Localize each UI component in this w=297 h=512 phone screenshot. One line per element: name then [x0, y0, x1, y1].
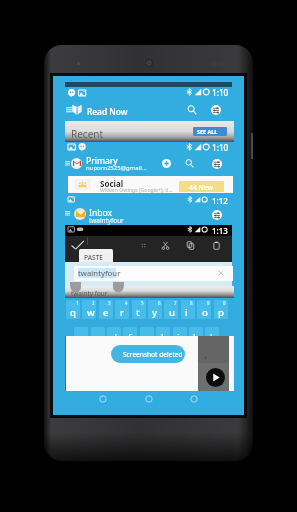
staticText: 7: [174, 300, 177, 306]
staticText: a: [79, 331, 85, 344]
button[interactable]: [123, 327, 137, 346]
staticText: 6: [158, 300, 161, 306]
staticText: f: [128, 331, 132, 344]
staticText: 4: [125, 300, 128, 306]
staticText: i: [185, 306, 188, 319]
staticText: PASTE: [84, 253, 104, 262]
button[interactable]: Copy: [186, 241, 195, 250]
button[interactable]: [164, 300, 178, 319]
button[interactable]: [115, 300, 129, 319]
button[interactable]: [68, 176, 233, 193]
staticText: j: [177, 331, 180, 344]
button[interactable]: [86, 155, 122, 166]
button[interactable]: [156, 327, 170, 346]
button[interactable]: Tune: [211, 105, 221, 115]
button[interactable]: [91, 327, 105, 346]
button[interactable]: [87, 105, 131, 117]
button[interactable]: [99, 300, 113, 319]
staticText: 1:10: [212, 87, 229, 98]
staticText: twainty four: [71, 289, 108, 298]
staticText: y: [152, 306, 158, 319]
staticText: q: [70, 306, 76, 319]
staticText: William Owings (Google+), d...: [100, 186, 173, 193]
staticText: 1:12: [212, 195, 228, 206]
staticText: w: [87, 306, 95, 319]
staticText: d: [111, 331, 117, 344]
staticText: 1: [76, 300, 79, 306]
button[interactable]: [181, 300, 195, 319]
button[interactable]: [197, 300, 211, 319]
button[interactable]: [111, 345, 185, 363]
staticText: twaintyfour: [89, 216, 124, 225]
staticText: g: [144, 331, 150, 344]
button[interactable]: Play: [206, 368, 225, 387]
button[interactable]: Home: [141, 391, 157, 407]
button[interactable]: [89, 207, 115, 218]
staticText: h: [161, 331, 168, 344]
staticText: Read Now: [87, 106, 128, 117]
button[interactable]: Clear: [216, 268, 226, 278]
staticText: k: [193, 331, 199, 344]
button[interactable]: [214, 300, 228, 319]
button[interactable]: Cut: [161, 241, 170, 250]
staticText: u: [169, 306, 176, 319]
button[interactable]: Recents: [186, 391, 202, 407]
button[interactable]: [148, 300, 162, 319]
button[interactable]: [74, 327, 88, 346]
staticText: t: [136, 306, 140, 319]
staticText: l: [210, 331, 213, 344]
staticText: SEE ALL: [197, 128, 218, 135]
staticText: 0: [223, 300, 226, 306]
staticText: Inbox: [89, 207, 113, 219]
button[interactable]: Options: [212, 159, 222, 169]
staticText: e: [103, 306, 109, 319]
button[interactable]: Paste: [212, 241, 221, 250]
staticText: twaintyfour: [78, 268, 121, 279]
button[interactable]: [107, 327, 121, 346]
staticText: Screenshot deleted: [123, 350, 183, 359]
button[interactable]: [189, 327, 203, 346]
staticText: Primary: [86, 155, 118, 167]
staticText: 9: [207, 300, 210, 306]
staticText: Social: [100, 178, 124, 189]
button[interactable]: Options: [212, 210, 222, 220]
staticText: nuporn2525@gmail...: [86, 164, 147, 172]
button[interactable]: Back: [95, 391, 111, 407]
staticText: s: [95, 331, 100, 344]
staticText: Recent: [71, 127, 104, 141]
button[interactable]: [82, 300, 96, 319]
button[interactable]: [205, 327, 219, 346]
button[interactable]: Done: [69, 239, 85, 252]
button[interactable]: [132, 300, 146, 319]
staticText: 3: [108, 300, 111, 306]
button[interactable]: [173, 327, 187, 346]
staticText: 1:13: [212, 225, 228, 236]
staticText: 44 New: [189, 183, 214, 192]
staticText: r: [120, 306, 125, 319]
button[interactable]: Search: [184, 158, 195, 169]
button[interactable]: Search: [186, 104, 198, 116]
staticText: o: [202, 306, 208, 319]
staticText: 1:10: [212, 142, 229, 153]
staticText: 2: [92, 300, 95, 306]
button[interactable]: [140, 327, 154, 346]
button[interactable]: Select all: [139, 241, 148, 250]
staticText: 8: [190, 300, 193, 306]
button[interactable]: [66, 300, 80, 319]
button[interactable]: Compose: [162, 159, 171, 168]
staticText: 5: [141, 300, 144, 306]
staticText: p: [218, 306, 224, 319]
